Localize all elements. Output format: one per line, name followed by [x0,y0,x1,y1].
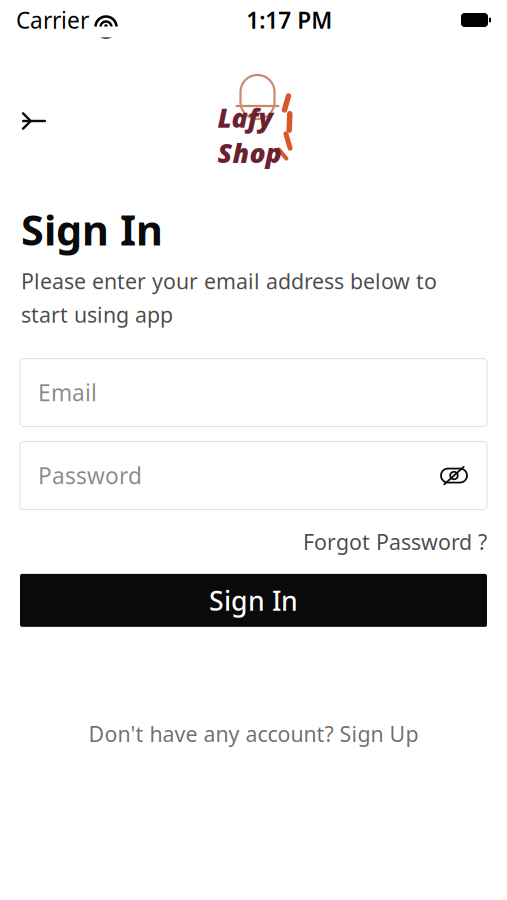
staticText: Sign In [21,202,163,257]
button[interactable]: Password [20,441,487,509]
staticText: Forgot Password ? [303,527,487,556]
staticText: Password [38,460,142,491]
staticText: Carrier [16,5,89,35]
staticText: Please enter your email address below to… [21,267,437,329]
staticText: Don't have any account? Sign Up [88,720,418,748]
button[interactable]: Email [20,358,487,426]
button[interactable]: Forgot Password ? [303,523,487,560]
staticText: Sign In [209,583,298,618]
staticText: 1:17 PM [246,5,332,35]
staticText: Email [38,377,97,408]
staticText: Lafy Shop [217,100,281,170]
button[interactable]: Sign In [20,574,487,627]
button[interactable]: Don't have any account? Sign Up [78,714,428,754]
button[interactable]: Back [12,99,56,143]
